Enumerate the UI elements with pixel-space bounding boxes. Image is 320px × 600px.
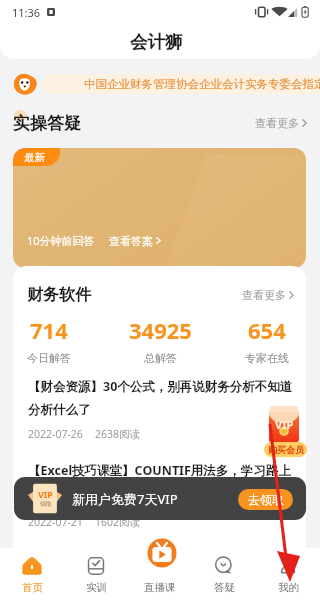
staticText: 654 — [248, 315, 286, 345]
staticText: 领取 — [40, 500, 52, 508]
button[interactable]: 首页 — [0, 548, 64, 600]
staticText: 查看答案 — [109, 234, 153, 248]
staticText: 实训 — [86, 581, 107, 594]
staticText: 财务软件 — [27, 285, 91, 305]
staticText: 11:36 — [12, 5, 41, 20]
staticText: 【Excel技巧课堂】COUNTIF用法多，学习路上 — [28, 462, 291, 479]
staticText: 今日解答 — [27, 351, 71, 365]
staticText: 答疑 — [214, 581, 235, 594]
staticText: 查看更多 — [255, 116, 299, 130]
button[interactable]: Lion avatar — [13, 72, 37, 96]
button[interactable]: 实训 — [64, 548, 128, 600]
staticText: 1602阅读 — [95, 515, 141, 529]
button[interactable]: 中国企业财务管理协会企业会计实务专委会指定 — [42, 74, 320, 94]
staticText: 购买会员 — [268, 444, 304, 455]
staticText: 【财会资源】30个公式，别再说财务分析不知道分析什么了 — [28, 378, 295, 418]
button[interactable]: 【财会资源】30个公式，别再说财务分析不知道分析什么了 — [13, 378, 306, 441]
staticText: 10分钟前回答 — [27, 233, 95, 248]
button[interactable]: 最新 — [13, 148, 306, 268]
button[interactable]: 我的 — [256, 548, 320, 600]
staticText: 直播课 — [144, 581, 176, 594]
button[interactable]: 直播课 — [128, 548, 192, 600]
staticText: 中国企业财务管理协会企业会计实务专委会指定 — [84, 77, 320, 91]
staticText: 最新 — [24, 151, 45, 164]
button[interactable]: 答疑 — [192, 548, 256, 600]
button[interactable]: Buy VIP membership — [264, 403, 307, 457]
staticText: 总解答 — [144, 351, 177, 365]
staticText: VIP — [38, 488, 53, 500]
staticText: 新用户免费7天VIP — [72, 490, 178, 508]
button[interactable]: 去领取 — [238, 489, 293, 510]
staticText: 会计狮 — [130, 31, 183, 53]
staticText: 实操答疑 — [13, 113, 81, 134]
staticText: 34925 — [129, 315, 192, 345]
staticText: 714 — [30, 315, 68, 345]
staticText: 我的 — [278, 581, 299, 594]
staticText: 查看更多 — [242, 288, 286, 302]
staticText: VIP — [275, 417, 294, 432]
staticText: 2638阅读 — [95, 427, 141, 441]
button[interactable]: 查看更多 — [242, 288, 294, 302]
button[interactable]: 查看更多 — [255, 116, 307, 130]
staticText: 去领取 — [248, 492, 284, 507]
button[interactable]: Live courses — [147, 538, 177, 568]
button[interactable]: VIP — [14, 477, 306, 520]
staticText: 首页 — [22, 581, 43, 594]
staticText: 专家在线 — [245, 351, 289, 365]
staticText: 2022-07-21 — [28, 515, 83, 529]
staticText: 2022-07-26 — [28, 427, 83, 441]
button[interactable]: 【Excel技巧课堂】COUNTIF用法多，学习路上 — [13, 462, 306, 529]
